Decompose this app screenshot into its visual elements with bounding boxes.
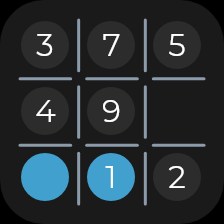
button[interactable]: 1	[78, 144, 144, 210]
staticText: 4	[35, 92, 56, 130]
button[interactable]: 7	[78, 12, 144, 78]
staticText: 9	[102, 92, 121, 130]
button[interactable]: 2	[144, 144, 210, 210]
button[interactable]	[144, 78, 210, 144]
button[interactable]: 9	[78, 78, 144, 144]
staticText: 1	[105, 158, 117, 196]
button[interactable]: 4	[12, 78, 78, 144]
staticText: 2	[168, 158, 186, 196]
button[interactable]	[12, 144, 78, 210]
button[interactable]: 5	[144, 12, 210, 78]
button[interactable]: 3	[12, 12, 78, 78]
staticText: 5	[168, 26, 186, 64]
staticText: 3	[36, 26, 54, 64]
staticText: 7	[102, 26, 121, 64]
